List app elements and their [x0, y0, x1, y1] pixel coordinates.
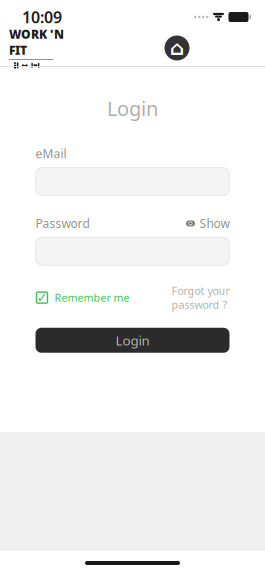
staticText: 10:09: [22, 6, 62, 28]
staticText: eMail: [35, 146, 66, 161]
button[interactable]: Login: [35, 328, 229, 353]
staticText: Show: [199, 215, 229, 231]
staticText: Password: [35, 215, 89, 231]
button[interactable]: Show: [185, 215, 229, 231]
staticText: ↔: [21, 61, 28, 70]
staticText: Forgot your password ?: [171, 283, 229, 312]
staticText: Remember me: [54, 290, 129, 305]
staticText: ✓: [36, 290, 47, 305]
button[interactable]: ✓: [35, 290, 129, 305]
staticText: Login: [115, 331, 149, 349]
staticText: ⌂: [170, 37, 184, 59]
staticText: WORK 'N FIT: [9, 26, 64, 58]
button[interactable]: Forgot your password ?: [171, 283, 229, 312]
staticText: Login: [107, 95, 158, 122]
button[interactable]: Home: [161, 32, 193, 64]
